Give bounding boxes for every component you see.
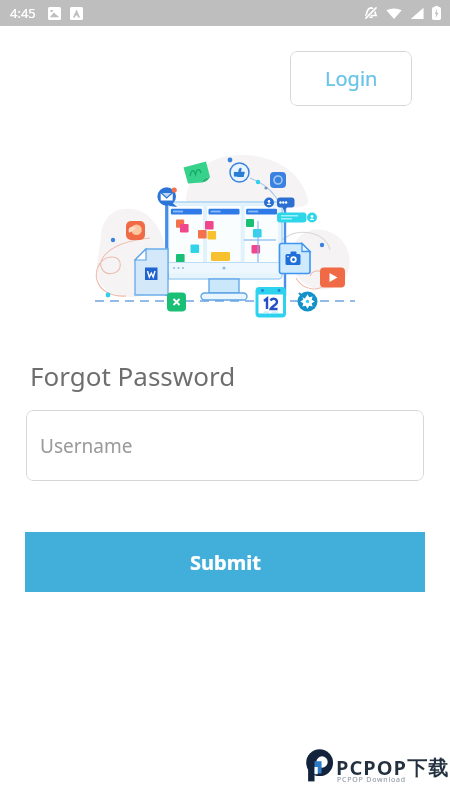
staticText: Submit <box>190 549 261 576</box>
staticText: Login <box>325 65 378 92</box>
button[interactable]: Login <box>290 51 412 106</box>
button[interactable]: Submit <box>25 532 425 592</box>
staticText: PCPOP下载 <box>336 754 449 781</box>
button[interactable]: Username <box>26 410 424 481</box>
staticText: PCPOP Download <box>337 775 406 785</box>
staticText: 4:45 <box>10 4 36 22</box>
staticText: Forgot Password <box>30 358 236 393</box>
staticText: Username <box>40 433 133 459</box>
